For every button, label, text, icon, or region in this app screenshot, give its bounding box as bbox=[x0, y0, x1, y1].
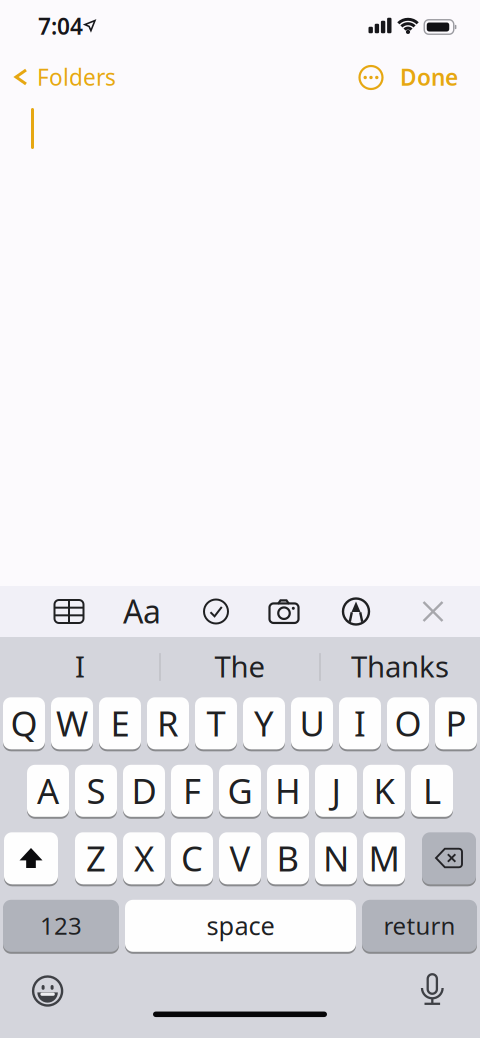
staticText: Done bbox=[400, 62, 458, 92]
staticText: I bbox=[354, 700, 366, 746]
staticText: K bbox=[373, 767, 394, 813]
staticText: J bbox=[331, 767, 340, 813]
button[interactable]: Q bbox=[3, 698, 45, 750]
staticText: X bbox=[134, 835, 154, 881]
button[interactable]: A bbox=[27, 765, 69, 817]
staticText: R bbox=[157, 700, 179, 746]
button[interactable]: Done bbox=[298, 62, 458, 92]
button[interactable]: Shift bbox=[4, 833, 58, 885]
staticText: A bbox=[37, 767, 59, 813]
button[interactable]: Emoji bbox=[28, 971, 68, 1011]
button[interactable]: Delete bbox=[422, 833, 476, 885]
button[interactable]: H bbox=[267, 765, 309, 817]
button[interactable]: I bbox=[5, 642, 155, 690]
button[interactable]: C bbox=[171, 833, 213, 885]
staticText: 123 bbox=[40, 910, 82, 941]
button[interactable]: W bbox=[51, 698, 93, 750]
staticText: return bbox=[383, 910, 455, 941]
button[interactable]: P bbox=[435, 698, 477, 750]
button[interactable]: 123 bbox=[3, 900, 119, 952]
button[interactable]: S bbox=[75, 765, 117, 817]
button[interactable]: G bbox=[219, 765, 261, 817]
staticText: C bbox=[181, 835, 203, 881]
staticText: space bbox=[206, 909, 274, 942]
staticText: V bbox=[229, 835, 250, 881]
staticText: Q bbox=[10, 700, 37, 746]
button[interactable]: K bbox=[363, 765, 405, 817]
staticText: Aa bbox=[123, 590, 161, 632]
button[interactable]: U bbox=[291, 698, 333, 750]
button[interactable]: O bbox=[387, 698, 429, 750]
button[interactable]: Z bbox=[75, 833, 117, 885]
staticText: D bbox=[131, 767, 156, 813]
button[interactable]: N bbox=[315, 833, 357, 885]
staticText: 7:04 bbox=[38, 11, 83, 41]
staticText: P bbox=[445, 700, 466, 746]
button[interactable]: V bbox=[219, 833, 261, 885]
staticText: U bbox=[299, 700, 324, 746]
button[interactable]: Folders bbox=[15, 62, 235, 92]
button[interactable]: Markup bbox=[336, 591, 376, 631]
staticText: B bbox=[276, 835, 299, 881]
button[interactable]: Dictation bbox=[412, 970, 452, 1010]
staticText: S bbox=[86, 767, 105, 813]
button[interactable]: R bbox=[147, 698, 189, 750]
button[interactable]: D bbox=[123, 765, 165, 817]
staticText: Z bbox=[86, 835, 106, 881]
button[interactable]: Insert table bbox=[49, 591, 89, 631]
button[interactable]: return bbox=[362, 900, 477, 952]
button[interactable]: X bbox=[123, 833, 165, 885]
staticText: M bbox=[368, 835, 399, 881]
staticText: E bbox=[110, 700, 129, 746]
staticText: N bbox=[323, 835, 349, 881]
button[interactable]: J bbox=[315, 765, 357, 817]
button[interactable]: T bbox=[195, 698, 237, 750]
button[interactable]: M bbox=[363, 833, 405, 885]
staticText: W bbox=[56, 700, 88, 746]
button[interactable]: Dismiss keyboard bbox=[413, 591, 453, 631]
staticText: L bbox=[423, 767, 441, 813]
staticText: Thanks bbox=[351, 646, 449, 685]
button[interactable]: L bbox=[411, 765, 453, 817]
staticText: F bbox=[183, 767, 201, 813]
button[interactable]: Y bbox=[243, 698, 285, 750]
staticText: Folders bbox=[37, 62, 116, 92]
staticText: H bbox=[275, 767, 301, 813]
button[interactable]: Format bbox=[118, 591, 166, 631]
staticText: O bbox=[394, 700, 421, 746]
staticText: I bbox=[75, 646, 85, 685]
button[interactable]: E bbox=[99, 698, 141, 750]
staticText: G bbox=[227, 767, 252, 813]
staticText: The bbox=[214, 646, 265, 685]
button[interactable]: I bbox=[339, 698, 381, 750]
button[interactable]: Checklist bbox=[196, 591, 236, 631]
staticText: T bbox=[206, 700, 225, 746]
button[interactable]: Thanks bbox=[325, 642, 475, 690]
staticText: Y bbox=[254, 700, 274, 746]
button[interactable]: More bbox=[355, 61, 387, 93]
button[interactable]: space bbox=[125, 900, 356, 952]
button[interactable]: Camera bbox=[264, 591, 304, 631]
button[interactable]: The bbox=[165, 642, 315, 690]
button[interactable]: F bbox=[171, 765, 213, 817]
button[interactable]: B bbox=[267, 833, 309, 885]
